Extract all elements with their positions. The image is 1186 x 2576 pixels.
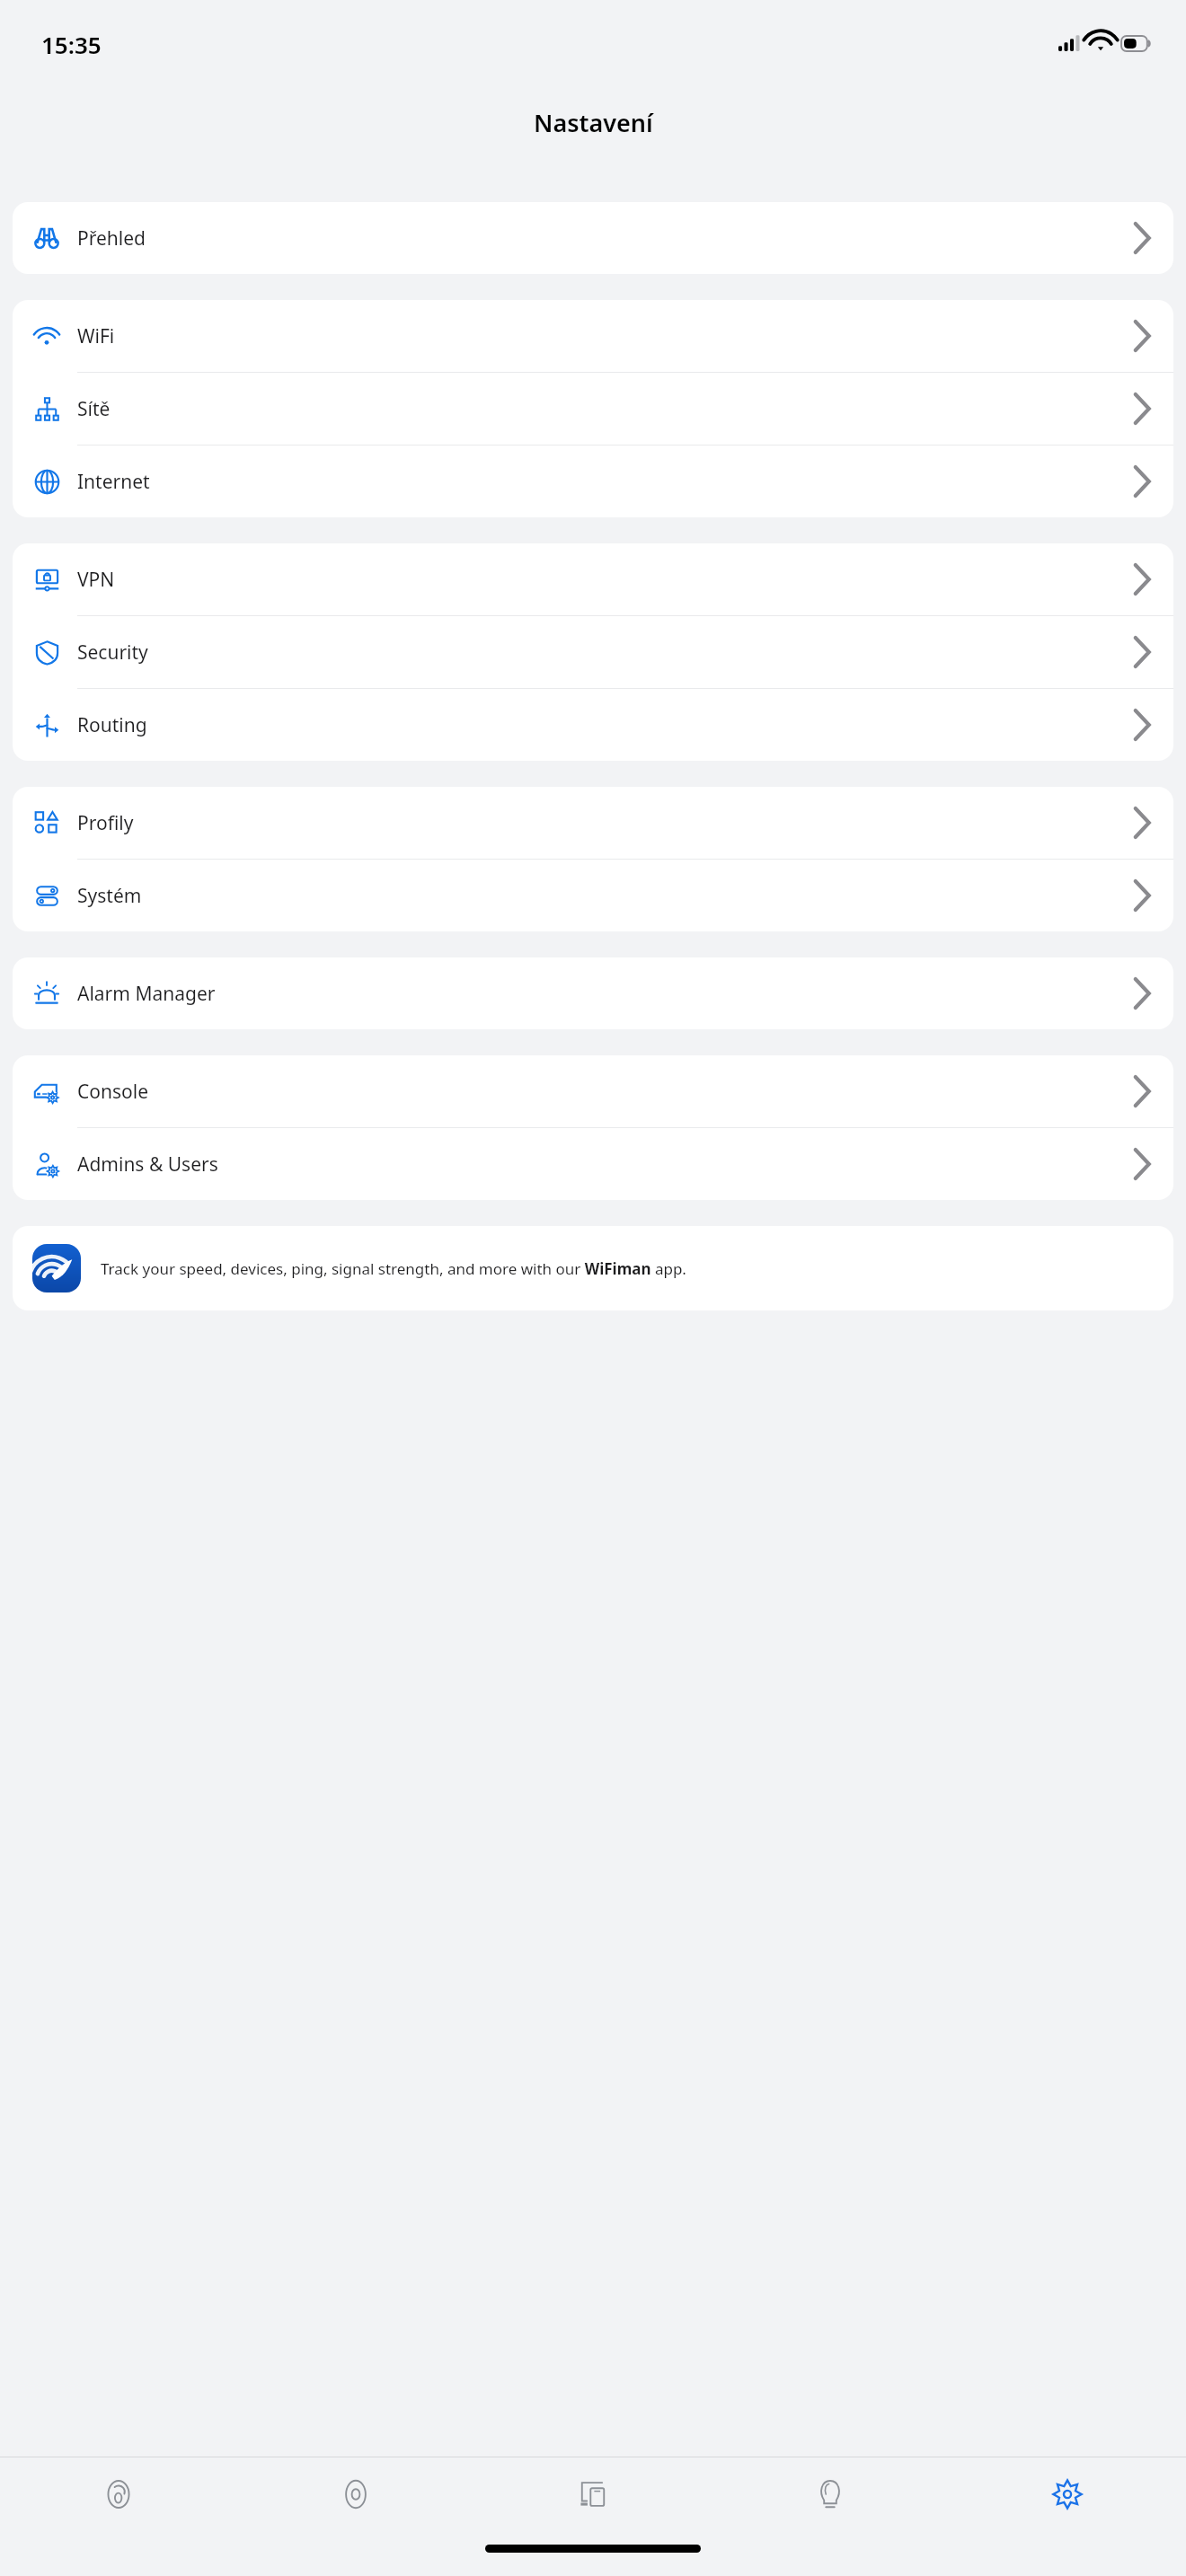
staticText: Track your speed, devices, ping, signal … <box>101 1258 686 1279</box>
button[interactable]: Přehled <box>13 202 1173 274</box>
button[interactable]: Internet <box>13 446 1173 517</box>
staticText: VPN <box>77 567 115 593</box>
staticText: Sítě <box>77 396 111 422</box>
button[interactable]: Settings <box>949 2457 1186 2531</box>
staticText: Systém <box>77 883 142 909</box>
button[interactable]: WiFi <box>13 300 1173 372</box>
button[interactable]: Speed Test <box>0 2457 237 2531</box>
staticText: Alarm Manager <box>77 981 216 1007</box>
button[interactable]: Insights <box>712 2457 949 2531</box>
staticText: Profily <box>77 810 134 836</box>
button[interactable]: Alarm Manager <box>13 957 1173 1029</box>
button[interactable]: Admins & Users <box>13 1128 1173 1200</box>
button[interactable]: Track your speed, devices, ping, signal … <box>13 1226 1173 1310</box>
staticText: Security <box>77 640 148 666</box>
staticText: 15:35 <box>41 29 102 60</box>
button[interactable]: Profily <box>13 787 1173 859</box>
staticText: Routing <box>77 712 147 738</box>
button[interactable]: Systém <box>13 860 1173 931</box>
staticText: Internet <box>77 469 150 495</box>
staticText: Nastavení <box>534 106 653 139</box>
staticText: Console <box>77 1079 148 1105</box>
button[interactable]: Sítě <box>13 373 1173 445</box>
staticText: WiFi <box>77 323 115 349</box>
staticText: Přehled <box>77 225 146 251</box>
button[interactable]: Console <box>13 1055 1173 1127</box>
button[interactable]: VPN <box>13 543 1173 615</box>
staticText: Admins & Users <box>77 1151 218 1178</box>
button[interactable]: Security <box>13 616 1173 688</box>
button[interactable]: Devices <box>474 2457 712 2531</box>
button[interactable]: Discovery <box>237 2457 474 2531</box>
button[interactable]: Routing <box>13 689 1173 761</box>
